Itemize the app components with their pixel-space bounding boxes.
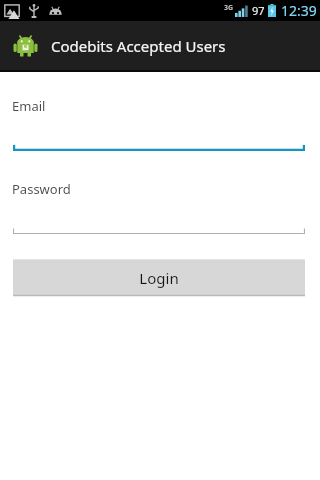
button[interactable]	[13, 117, 305, 151]
staticText: Password	[12, 180, 71, 198]
staticText: Email	[12, 97, 46, 115]
button[interactable]	[13, 200, 305, 234]
other: App icon	[13, 33, 38, 58]
staticText: 3G	[224, 3, 234, 13]
staticText: 97	[252, 3, 265, 18]
button[interactable]: Login	[13, 259, 305, 296]
staticText: Codebits Accepted Users	[51, 36, 226, 56]
staticText: Login	[139, 268, 179, 288]
staticText: 12:39	[281, 1, 317, 20]
